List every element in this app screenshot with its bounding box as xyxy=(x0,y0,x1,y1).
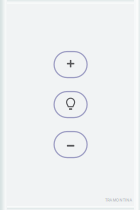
staticText: TRAMONTINA xyxy=(105,198,132,202)
button[interactable]: Toggle light xyxy=(54,91,87,117)
button[interactable]: Brightness down xyxy=(54,132,87,158)
button[interactable]: Brightness up xyxy=(54,51,87,77)
